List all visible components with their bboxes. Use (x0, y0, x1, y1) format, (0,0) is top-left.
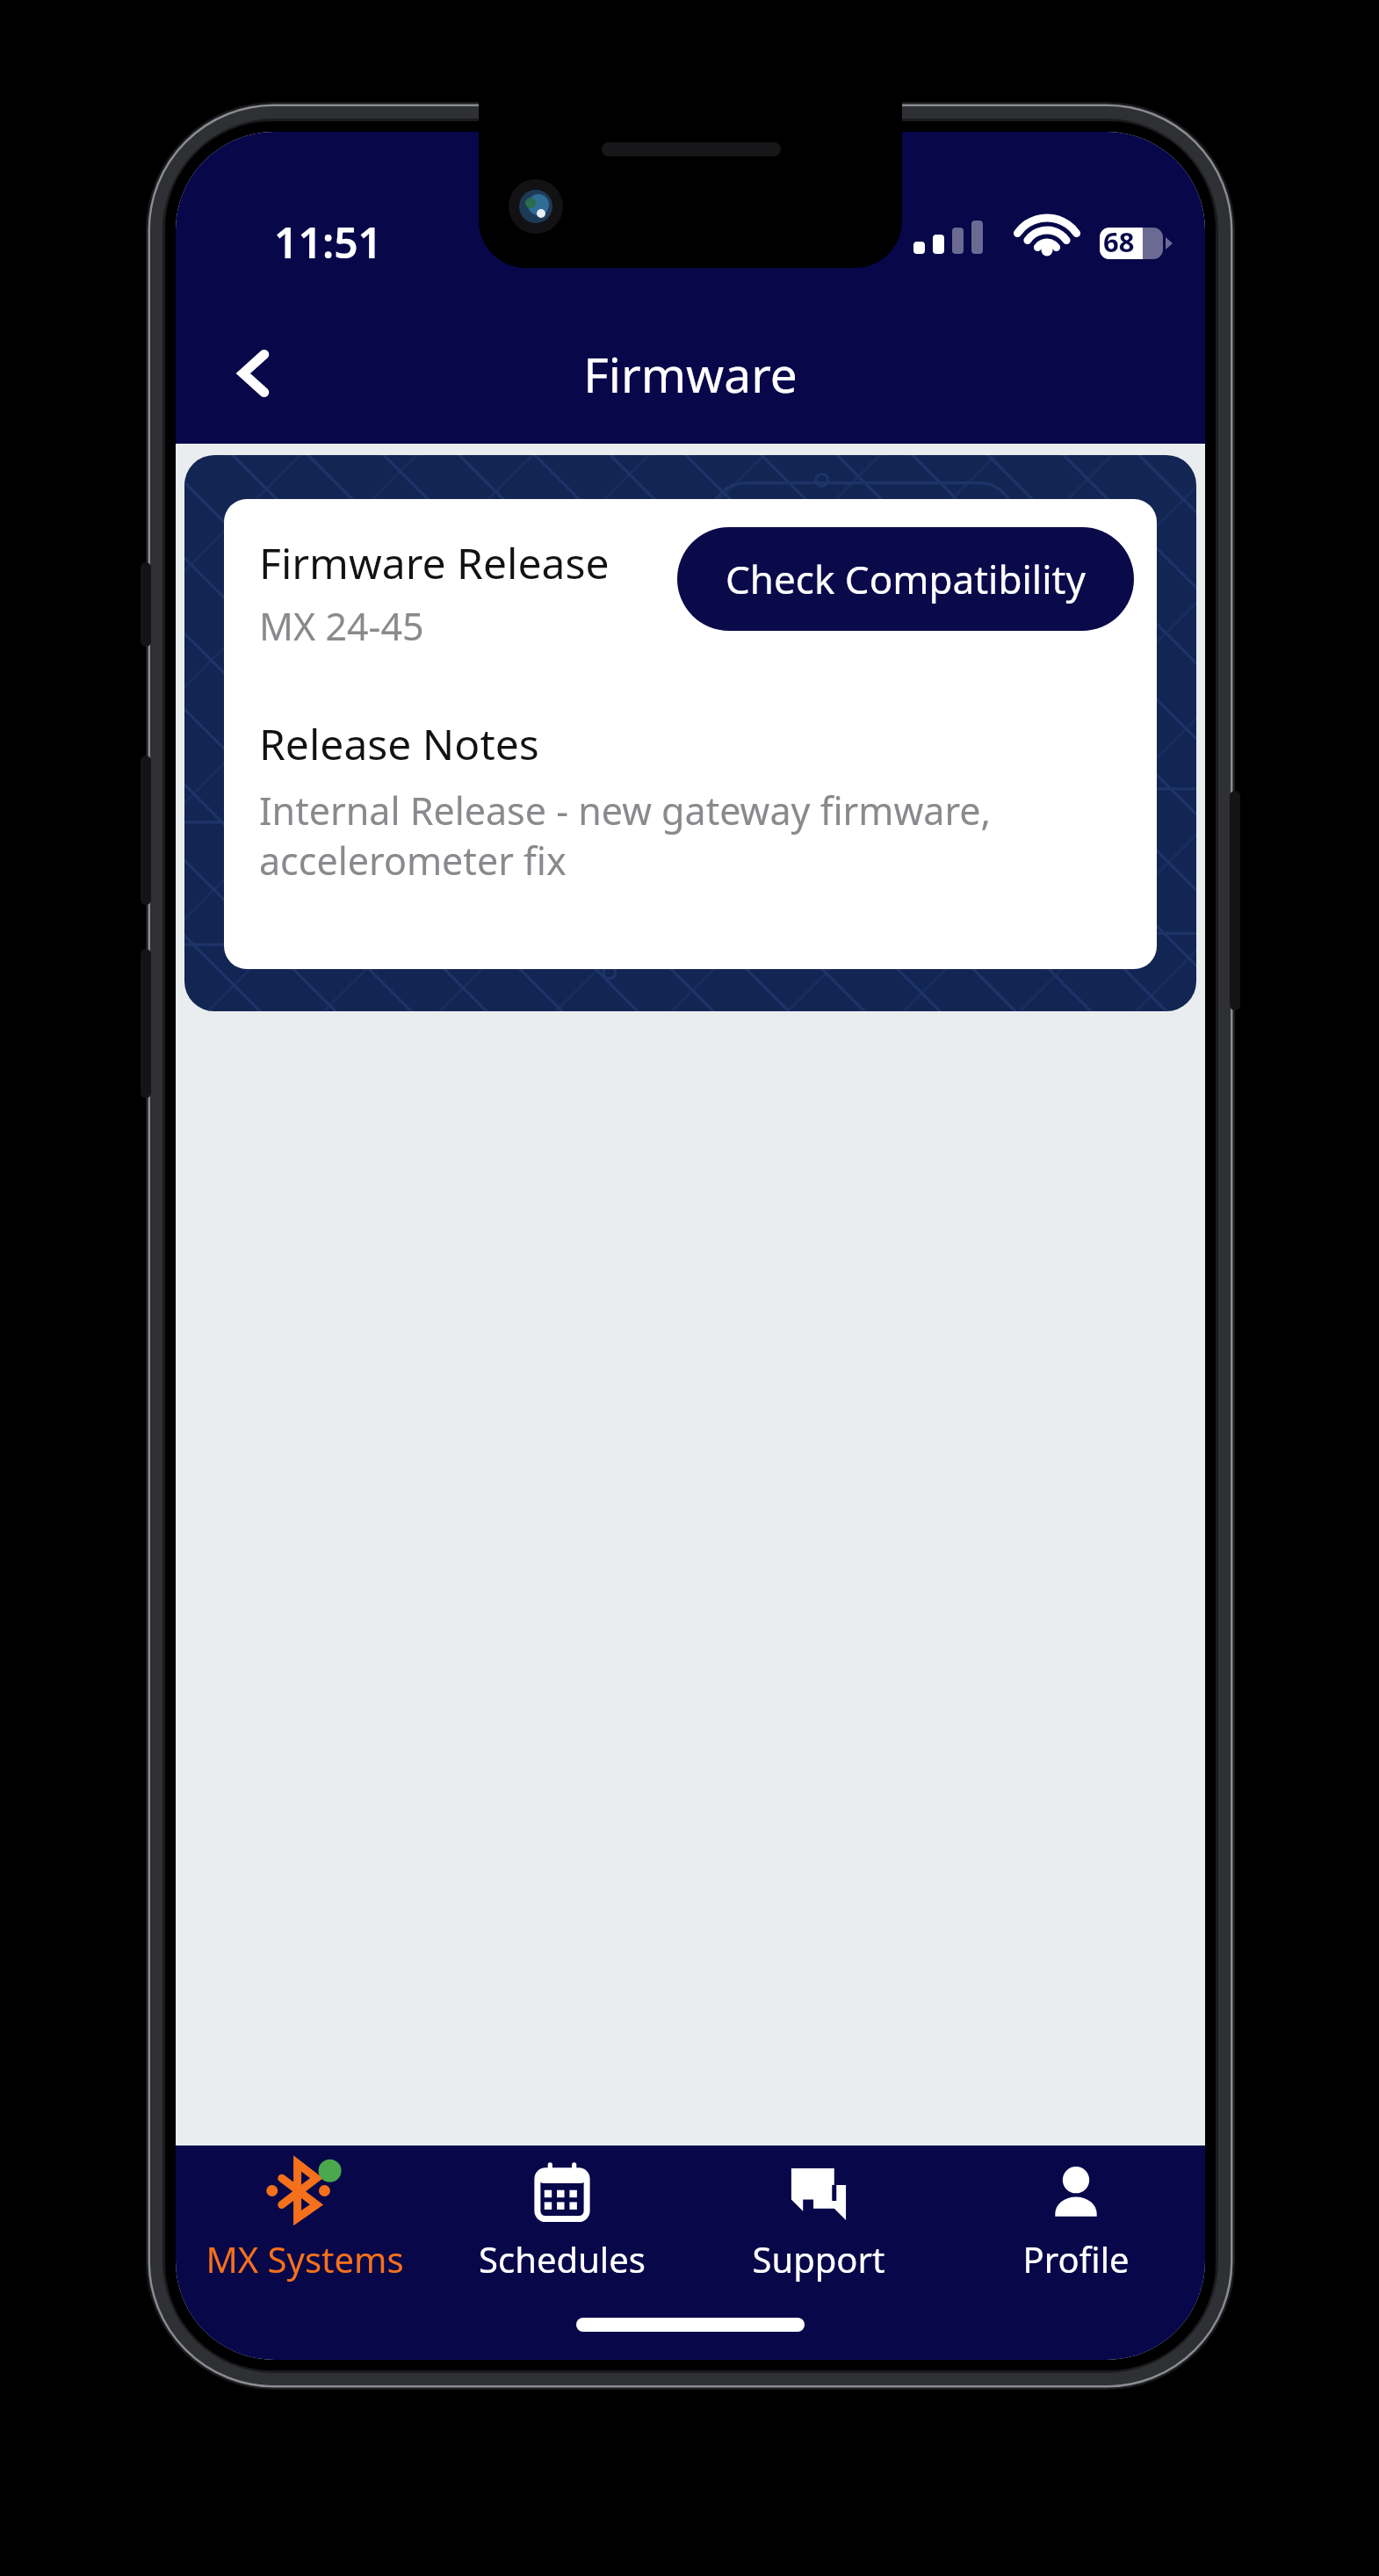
staticText: MX 24-45 (259, 600, 424, 652)
staticText: Support (752, 2235, 885, 2283)
button[interactable]: Support (691, 2145, 946, 2295)
staticText: Schedules (479, 2235, 646, 2283)
staticText: 68 (1103, 223, 1135, 260)
staticText: Firmware (583, 341, 798, 407)
staticText: Internal Release - new gateway firmware,… (259, 785, 1099, 886)
button[interactable]: Schedules (435, 2145, 689, 2295)
staticText: MX Systems (206, 2235, 404, 2283)
button[interactable]: MX Systems (177, 2145, 432, 2295)
staticText: Firmware Release (259, 534, 610, 591)
staticText: Check Compatibility (726, 553, 1086, 605)
staticText: 11:51 (274, 213, 383, 271)
staticText: Profile (1022, 2235, 1130, 2283)
staticText: Release Notes (259, 715, 539, 772)
button[interactable]: Check Compatibility (677, 527, 1134, 631)
button[interactable]: Back (202, 321, 307, 426)
button[interactable]: Profile (949, 2145, 1203, 2295)
